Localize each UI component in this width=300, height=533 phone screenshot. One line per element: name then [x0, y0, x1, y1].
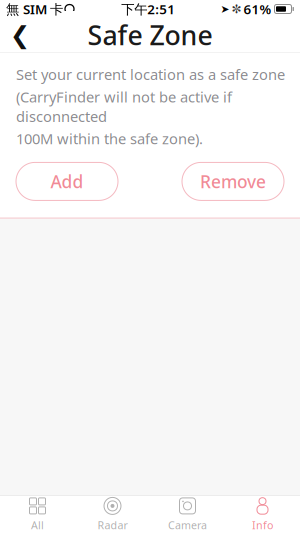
staticText: Set your current location as a safe zone — [16, 64, 285, 84]
staticText: Safe Zone — [87, 17, 212, 53]
staticText: ✼ — [231, 2, 241, 16]
staticText: 無 SIM 卡 — [6, 0, 63, 18]
button[interactable]: All — [0, 496, 75, 533]
staticText: Camera — [168, 518, 207, 532]
staticText: 100M within the safe zone). — [16, 129, 203, 148]
staticText: All — [31, 518, 44, 532]
staticText: Add — [50, 170, 83, 193]
staticText: 下午2:51 — [121, 0, 175, 18]
button[interactable]: Camera — [150, 496, 225, 533]
button[interactable]: Add — [16, 162, 118, 200]
staticText: (CarryFinder will not be active if disco… — [16, 87, 232, 126]
button[interactable]: Info — [225, 496, 300, 533]
staticText: 61% — [243, 0, 271, 18]
button[interactable]: Remove — [182, 162, 284, 200]
staticText: Remove — [200, 170, 266, 193]
button[interactable]: Radar — [75, 496, 150, 533]
staticText: Radar — [97, 518, 127, 532]
button[interactable]: Back — [0, 18, 40, 52]
staticText: ❮ — [10, 21, 30, 49]
staticText: Info — [252, 518, 273, 532]
staticText: ➤ — [220, 3, 229, 15]
